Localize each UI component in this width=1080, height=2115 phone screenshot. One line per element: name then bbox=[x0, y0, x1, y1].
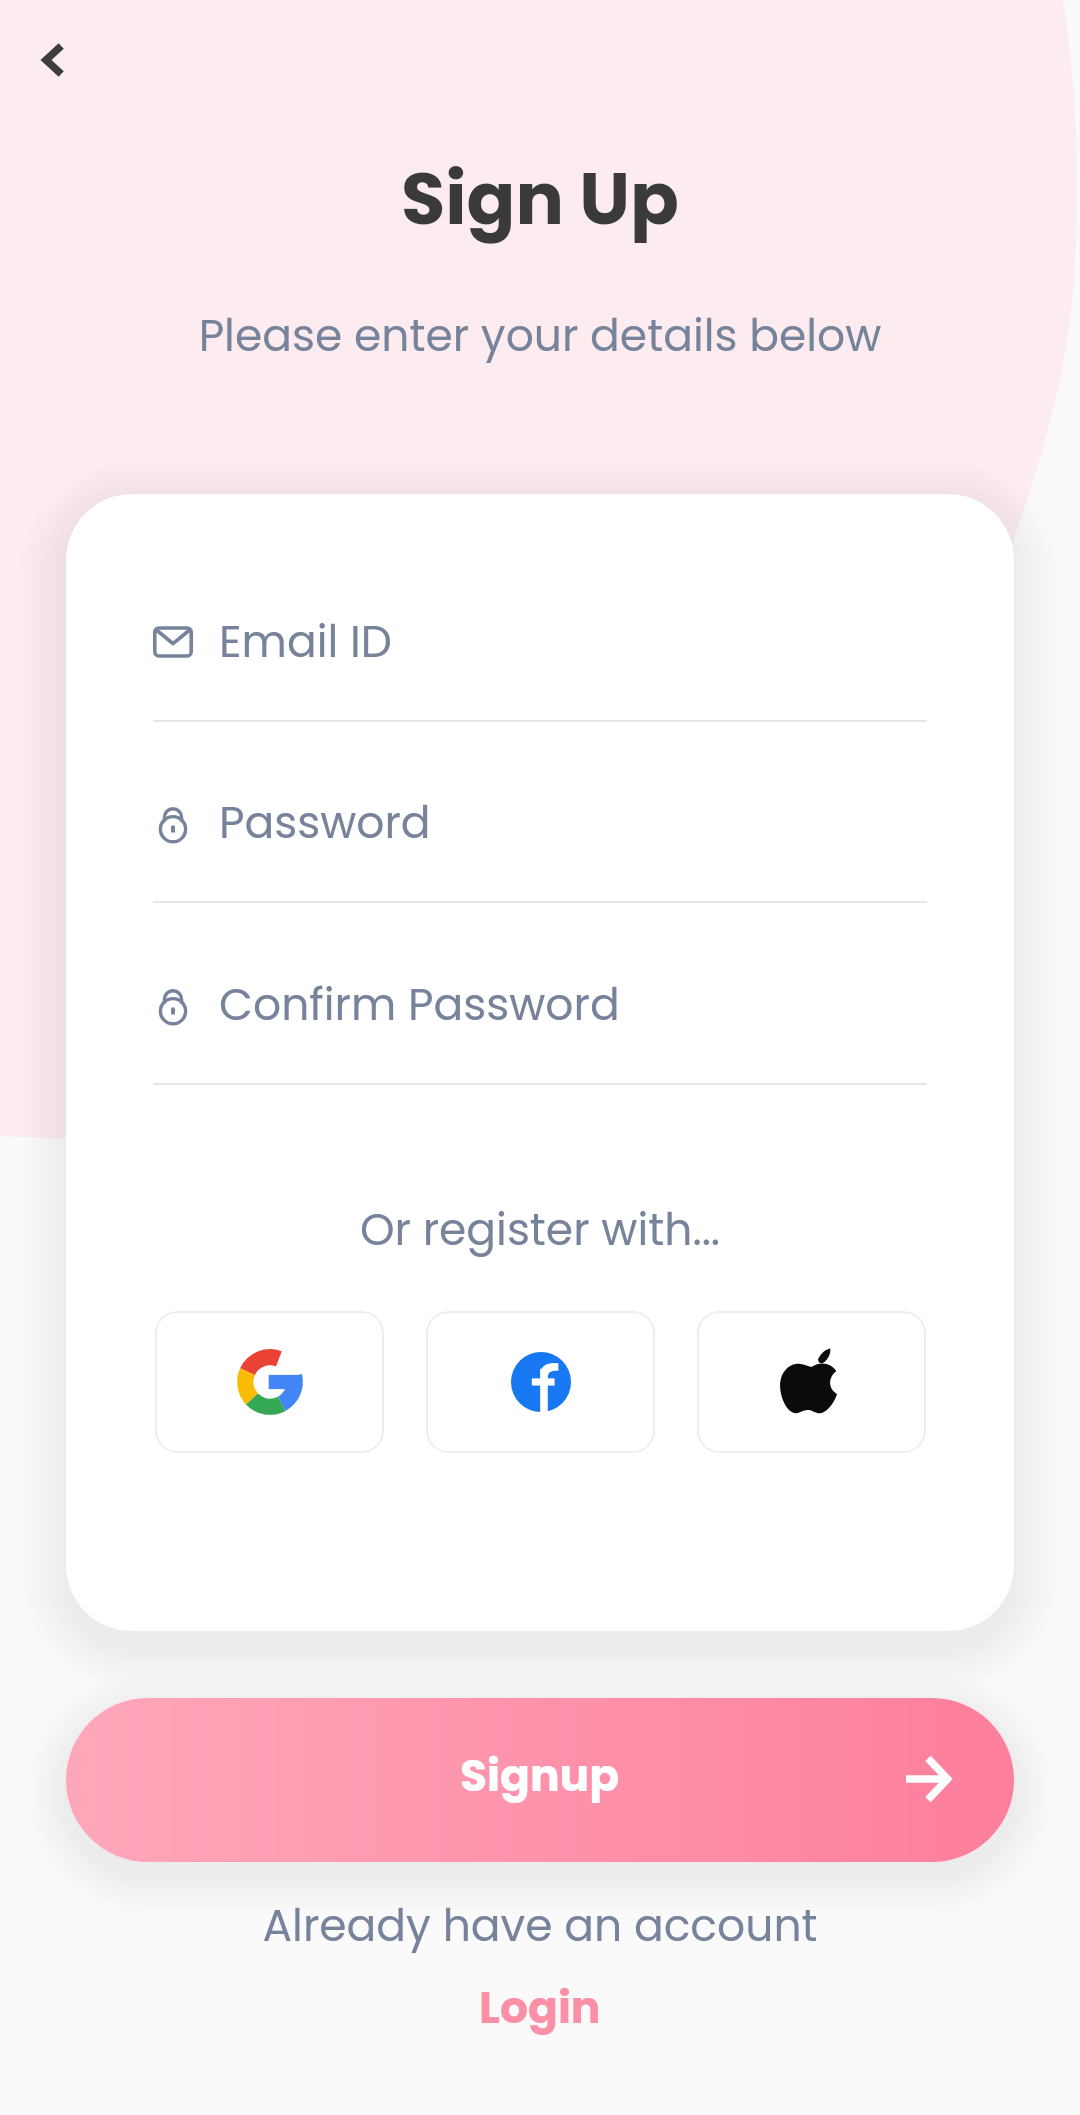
staticText: Email ID bbox=[219, 611, 392, 673]
button[interactable]: Sign up with Apple bbox=[697, 1311, 926, 1453]
staticText: Password bbox=[219, 792, 431, 854]
staticText: Confirm Password bbox=[219, 974, 620, 1036]
button[interactable]: Back bbox=[16, 22, 92, 98]
button[interactable]: Signup bbox=[66, 1698, 1014, 1862]
button[interactable]: Email ID bbox=[153, 602, 927, 722]
staticText: Sign Up bbox=[0, 148, 1080, 249]
staticText: Signup bbox=[460, 1745, 620, 1807]
staticText: Login bbox=[479, 1977, 601, 2039]
staticText: Please enter your details below bbox=[0, 305, 1080, 367]
button[interactable]: Login bbox=[451, 1968, 629, 2048]
staticText: Or register with... bbox=[66, 1199, 1014, 1261]
staticText: Already have an account bbox=[0, 1895, 1080, 1957]
button[interactable]: Confirm Password bbox=[153, 965, 927, 1085]
button[interactable]: Sign up with Facebook bbox=[426, 1311, 655, 1453]
button[interactable]: Password bbox=[153, 783, 927, 903]
button[interactable]: Sign up with Google bbox=[155, 1311, 384, 1453]
